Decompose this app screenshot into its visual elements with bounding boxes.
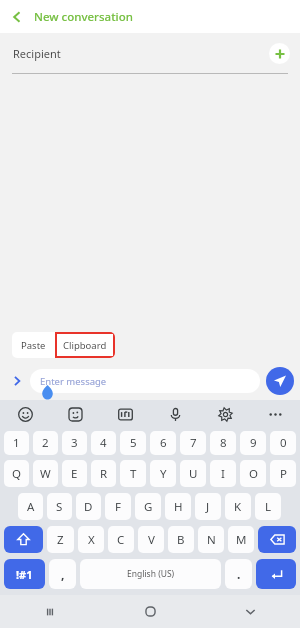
staticText: !#1 [16, 567, 33, 582]
staticText: 5 [130, 435, 137, 451]
staticText: 8 [220, 435, 227, 451]
button[interactable]: I [210, 460, 236, 487]
button[interactable]: H [165, 493, 191, 520]
staticText: Clipboard [63, 339, 107, 352]
staticText: D [84, 499, 93, 515]
staticText: P [280, 466, 287, 482]
staticText: 4 [100, 435, 107, 451]
button[interactable]: Q [4, 460, 29, 487]
button[interactable]: More options [250, 400, 300, 428]
staticText: , [61, 566, 65, 582]
button[interactable]: 8 [210, 431, 236, 455]
staticText: O [249, 466, 258, 482]
staticText: M [236, 532, 247, 548]
button[interactable]: Enter [256, 559, 296, 589]
button[interactable]: Emoji [0, 400, 50, 428]
button[interactable]: 7 [180, 431, 206, 455]
staticText: Z [57, 532, 64, 548]
staticText: Recipient [13, 46, 61, 61]
staticText: Enter message [40, 375, 107, 388]
button[interactable]: 6 [150, 431, 176, 455]
button[interactable]: Y [150, 460, 176, 487]
staticText: English (US) [127, 568, 175, 580]
button[interactable]: 3 [62, 431, 87, 455]
button[interactable]: Home [100, 595, 200, 628]
button[interactable]: Recipient [13, 33, 290, 74]
button[interactable]: D [76, 493, 101, 520]
button[interactable]: Recents [0, 595, 100, 628]
staticText: Y [160, 466, 167, 482]
button[interactable]: G [135, 493, 161, 520]
button[interactable]: A [18, 493, 43, 520]
button[interactable]: English (US) [80, 559, 221, 589]
staticText: 1 [13, 435, 20, 451]
button[interactable]: Hide keyboard [200, 595, 300, 628]
button[interactable]: X [78, 526, 104, 553]
staticText: E [71, 466, 78, 482]
button[interactable]: Send [266, 367, 294, 395]
staticText: G [144, 499, 153, 515]
button[interactable]: Add recipient [269, 43, 290, 64]
staticText: Paste [21, 339, 46, 352]
staticText: A [27, 499, 35, 515]
button[interactable]: Clipboard [63, 332, 107, 358]
staticText: L [265, 499, 272, 515]
button[interactable]: Voice input [150, 400, 200, 428]
button[interactable]: 5 [120, 431, 146, 455]
button[interactable]: F [105, 493, 131, 520]
button[interactable]: B [168, 526, 194, 553]
staticText: H [174, 499, 183, 515]
staticText: T [130, 466, 137, 482]
button[interactable]: C [108, 526, 134, 553]
staticText: I [221, 466, 225, 482]
staticText: N [207, 532, 216, 548]
staticText: S [56, 499, 63, 515]
button[interactable]: K [225, 493, 251, 520]
button[interactable]: E [62, 460, 87, 487]
button[interactable]: Back [0, 0, 34, 33]
staticText: K [234, 499, 242, 515]
button[interactable]: J [195, 493, 221, 520]
button[interactable]: Stickers [50, 400, 100, 428]
button[interactable]: GIF [100, 400, 150, 428]
button[interactable]: Shift [4, 526, 43, 553]
staticText: 0 [280, 435, 287, 451]
button[interactable]: P [270, 460, 296, 487]
staticText: 7 [190, 435, 197, 451]
button[interactable]: M [228, 526, 254, 553]
staticText: . [237, 566, 241, 582]
button[interactable]: O [240, 460, 266, 487]
button[interactable]: !#1 [4, 559, 45, 589]
button[interactable]: Enter message [30, 369, 260, 393]
button[interactable]: W [33, 460, 58, 487]
button[interactable]: . [225, 559, 252, 589]
staticText: 6 [160, 435, 167, 451]
staticText: C [117, 532, 125, 548]
button[interactable]: 9 [240, 431, 266, 455]
staticText: New conversation [34, 9, 133, 25]
button[interactable]: U [180, 460, 206, 487]
button[interactable]: 0 [270, 431, 296, 455]
staticText: X [88, 532, 95, 548]
button[interactable]: V [138, 526, 164, 553]
staticText: Q [12, 466, 21, 482]
button[interactable]: 2 [33, 431, 58, 455]
staticText: R [100, 466, 108, 482]
button[interactable]: Expand [6, 370, 28, 392]
staticText: B [177, 532, 185, 548]
button[interactable]: Z [47, 526, 74, 553]
button[interactable]: , [49, 559, 76, 589]
button[interactable]: Backspace [258, 526, 296, 553]
button[interactable]: 1 [4, 431, 29, 455]
button[interactable]: S [47, 493, 72, 520]
button[interactable]: T [120, 460, 146, 487]
staticText: F [115, 499, 121, 515]
staticText: V [148, 532, 155, 548]
button[interactable]: R [91, 460, 116, 487]
button[interactable]: L [255, 493, 281, 520]
button[interactable]: Back [0, 0, 300, 33]
button[interactable]: Settings [200, 400, 250, 428]
button[interactable]: 4 [91, 431, 116, 455]
button[interactable]: N [198, 526, 224, 553]
button[interactable]: Paste [21, 332, 46, 358]
